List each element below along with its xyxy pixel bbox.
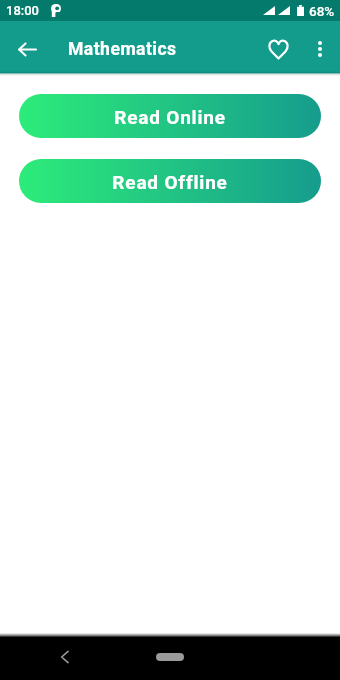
- button[interactable]: Read Offline: [19, 159, 321, 203]
- staticText: 18:00: [6, 3, 39, 18]
- staticText: Read Online: [114, 106, 226, 128]
- button[interactable]: Home: [156, 653, 184, 661]
- staticText: 68%: [309, 3, 335, 19]
- staticText: Mathematics: [68, 39, 177, 60]
- staticText: Read Offline: [112, 171, 228, 193]
- button[interactable]: More options: [300, 29, 340, 69]
- button[interactable]: Back: [53, 645, 77, 669]
- button[interactable]: Back: [7, 29, 47, 69]
- button[interactable]: Favorite: [258, 29, 298, 69]
- button[interactable]: Read Online: [19, 94, 321, 138]
